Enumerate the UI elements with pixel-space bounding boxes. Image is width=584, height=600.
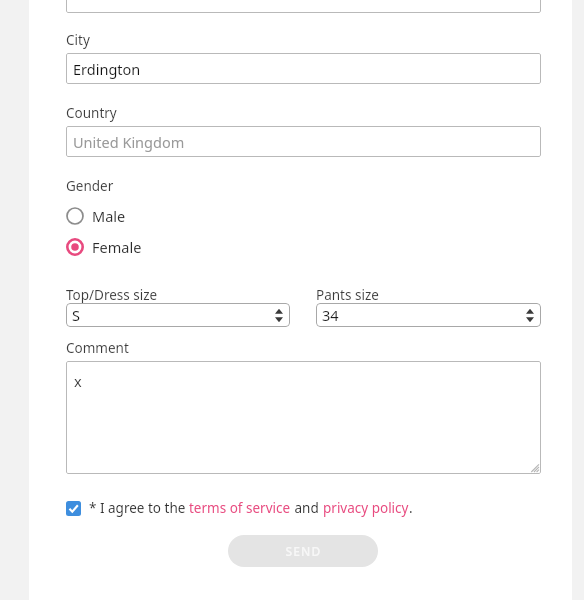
button[interactable]: terms of service bbox=[189, 499, 291, 517]
staticText: Top/Dress size bbox=[66, 286, 158, 304]
staticText: 34 bbox=[322, 305, 339, 325]
button[interactable]: Male bbox=[66, 203, 126, 229]
button[interactable]: Erdington bbox=[66, 53, 541, 84]
staticText: Comment bbox=[66, 339, 129, 357]
staticText: * I agree to the bbox=[89, 499, 189, 517]
staticText: privacy policy bbox=[323, 499, 409, 517]
button[interactable]: United Kingdom bbox=[66, 126, 541, 157]
button[interactable] bbox=[66, 0, 541, 13]
staticText: and bbox=[291, 499, 323, 517]
button[interactable]: SEND bbox=[228, 535, 378, 567]
button[interactable]: I agree to the terms of service bbox=[66, 501, 81, 516]
staticText: City bbox=[66, 31, 90, 49]
staticText: Country bbox=[66, 104, 117, 122]
staticText: S bbox=[72, 305, 80, 325]
staticText: Pants size bbox=[316, 286, 379, 304]
staticText: Erdington bbox=[73, 59, 141, 79]
button[interactable]: 34 bbox=[316, 303, 541, 327]
staticText: x bbox=[74, 371, 82, 391]
staticText: Gender bbox=[66, 177, 114, 195]
button[interactable]: privacy policy bbox=[323, 499, 409, 517]
staticText: Male bbox=[92, 206, 126, 226]
button[interactable]: S bbox=[66, 303, 290, 327]
staticText: United Kingdom bbox=[73, 132, 185, 152]
staticText: terms of service bbox=[189, 499, 291, 517]
staticText: . bbox=[409, 499, 413, 517]
button[interactable]: x bbox=[66, 361, 541, 474]
staticText: Female bbox=[92, 237, 142, 257]
button[interactable]: Female bbox=[66, 234, 142, 260]
staticText: SEND bbox=[285, 543, 322, 559]
